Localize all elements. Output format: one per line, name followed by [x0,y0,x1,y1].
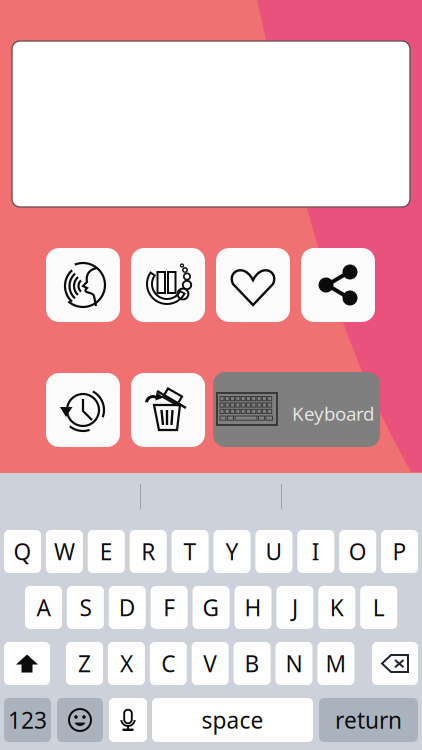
button[interactable]: Pause [131,248,205,322]
button[interactable]: Clear text [131,373,205,447]
staticText: G [203,592,220,622]
button[interactable]: R [130,530,167,573]
staticText: I [312,536,320,566]
staticText: X [120,648,133,678]
button[interactable]: Q [4,530,41,573]
staticText: S [79,592,91,622]
staticText: A [36,592,50,622]
staticText: Q [13,536,31,566]
button[interactable]: O [339,530,376,573]
button[interactable]: Y [213,530,250,573]
button[interactable]: Favourite [216,248,290,322]
staticText: N [285,648,302,678]
button[interactable]: Z [66,642,103,685]
staticText: P [393,536,407,566]
staticText: F [163,592,175,622]
staticText: O [349,536,367,566]
button[interactable]: F [151,586,188,629]
staticText: M [325,648,346,678]
button[interactable]: A [25,586,62,629]
button[interactable]: return [319,698,418,742]
staticText: B [245,648,260,678]
button[interactable]: Speak [46,248,120,322]
button[interactable]: Dictate [109,698,147,742]
button[interactable]: B [234,642,271,685]
button[interactable]: I [297,530,334,573]
staticText: R [141,536,155,566]
button[interactable]: G [193,586,230,629]
staticText: T [184,536,197,566]
button[interactable]: D [109,586,146,629]
button[interactable]: H [234,586,271,629]
button[interactable]: S [67,586,104,629]
staticText: K [330,592,344,622]
staticText: C [161,648,175,678]
button[interactable]: N [275,642,312,685]
staticText: H [244,592,261,622]
staticText: W [54,536,75,566]
button[interactable]: W [46,530,83,573]
button[interactable]: Emoji [57,698,103,742]
staticText: 123 [8,705,47,735]
staticText: return [335,705,402,735]
button[interactable]: History [46,373,120,447]
staticText: L [373,592,385,622]
button[interactable]: space [152,698,313,742]
staticText: U [265,536,282,566]
button[interactable]: Keyboard [213,372,380,447]
button[interactable]: L [360,586,397,629]
staticText: space [201,705,263,735]
staticText: J [292,592,298,622]
button[interactable]: T [172,530,209,573]
staticText: Z [78,648,91,678]
staticText: V [203,648,217,678]
button[interactable]: K [318,586,355,629]
staticText: D [119,592,136,622]
staticText: Y [225,536,238,566]
button[interactable]: P [381,530,418,573]
button[interactable]: E [88,530,125,573]
button[interactable]: C [150,642,187,685]
button[interactable]: X [108,642,145,685]
button[interactable]: U [255,530,292,573]
button[interactable]: Share [301,248,375,322]
button[interactable]: M [317,642,354,685]
button[interactable]: V [192,642,229,685]
button[interactable]: Delete [372,642,418,685]
button[interactable]: Shift [4,642,50,685]
button[interactable]: 123 [4,698,51,742]
staticText: E [100,536,113,566]
button[interactable]: J [276,586,313,629]
staticText: Keyboard [292,401,374,426]
